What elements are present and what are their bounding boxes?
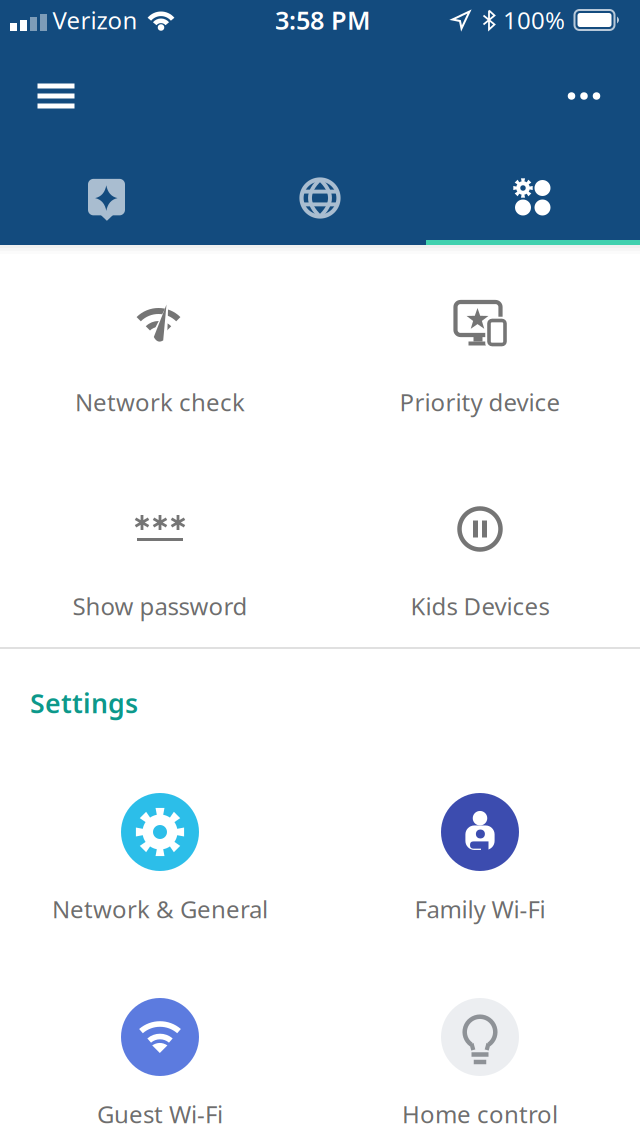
button[interactable]: Settings tab [426, 153, 639, 243]
button[interactable]: More [556, 74, 612, 118]
staticText: 100% [503, 4, 565, 36]
button[interactable]: Family Wi-Fi [320, 751, 640, 955]
staticText: 3:58 PM [275, 3, 371, 37]
button[interactable]: Priority device [320, 240, 640, 444]
button[interactable]: Assistant [0, 153, 213, 243]
staticText: Network & General [52, 893, 268, 925]
button[interactable]: Show password [0, 444, 320, 648]
button[interactable]: Network check [0, 240, 320, 444]
staticText: Guest Wi-Fi [97, 1098, 223, 1130]
staticText: Priority device [399, 386, 560, 418]
staticText: Show password [72, 590, 247, 622]
staticText: Network check [75, 386, 245, 418]
staticText: Kids Devices [410, 590, 549, 622]
button[interactable]: Guest Wi-Fi [0, 956, 320, 1136]
staticText: Home control [402, 1098, 558, 1130]
button[interactable]: Home control [320, 956, 640, 1136]
button[interactable]: Menu [28, 74, 84, 118]
staticText: Family Wi-Fi [414, 893, 545, 925]
staticText: Verizon [52, 4, 137, 36]
button[interactable]: Network [213, 153, 426, 243]
button[interactable]: Network & General [0, 751, 320, 955]
staticText: Settings [30, 685, 138, 721]
button[interactable]: Kids Devices [320, 444, 640, 648]
